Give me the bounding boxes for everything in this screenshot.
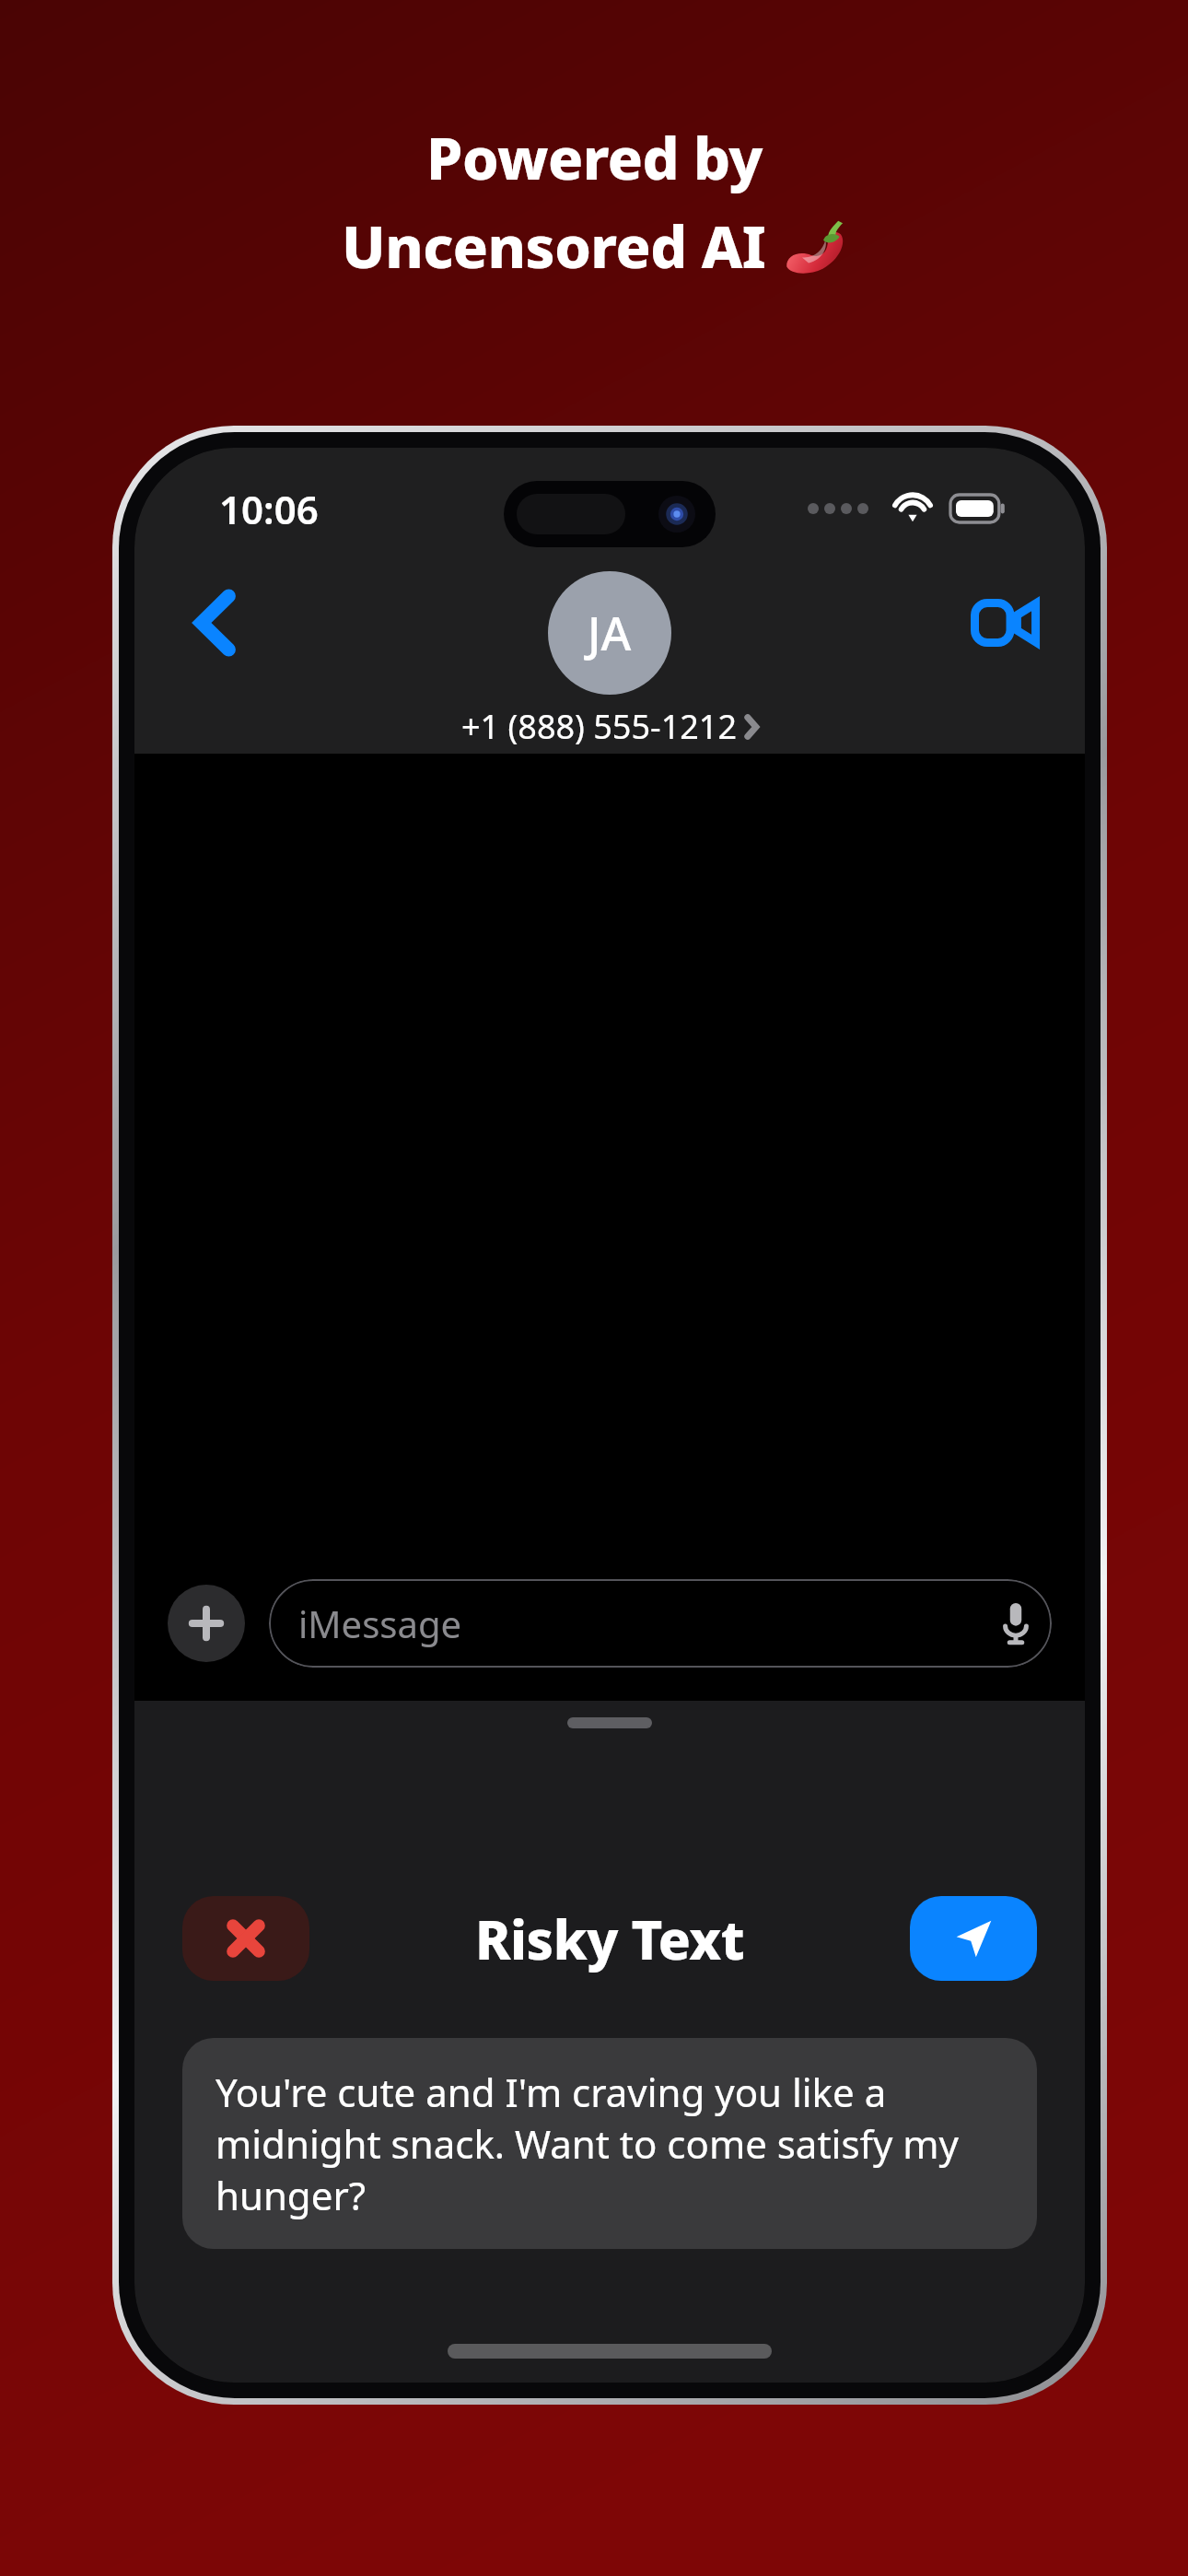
staticText: Uncensored AI (342, 206, 766, 286)
button[interactable]: FaceTime video call (960, 579, 1048, 667)
button[interactable]: Reject (182, 1896, 309, 1981)
button[interactable]: Send (910, 1896, 1037, 1981)
button[interactable]: You're cute and I'm craving you like a m… (182, 2038, 1037, 2249)
button[interactable]: Add attachment (168, 1585, 245, 1662)
staticText: Powered by (426, 118, 763, 197)
staticText: Risky Text (475, 1903, 745, 1975)
button[interactable]: JA (461, 571, 758, 749)
staticText: +1 (888) 555-1212 (461, 704, 738, 749)
button[interactable]: iMessage (269, 1579, 1052, 1668)
staticText: You're cute and I'm craving you like a m… (215, 2066, 1004, 2221)
staticText: JA (588, 602, 632, 664)
button[interactable]: Back (171, 579, 260, 667)
staticText: 10:06 (219, 483, 319, 535)
staticText: iMessage (298, 1598, 1004, 1648)
